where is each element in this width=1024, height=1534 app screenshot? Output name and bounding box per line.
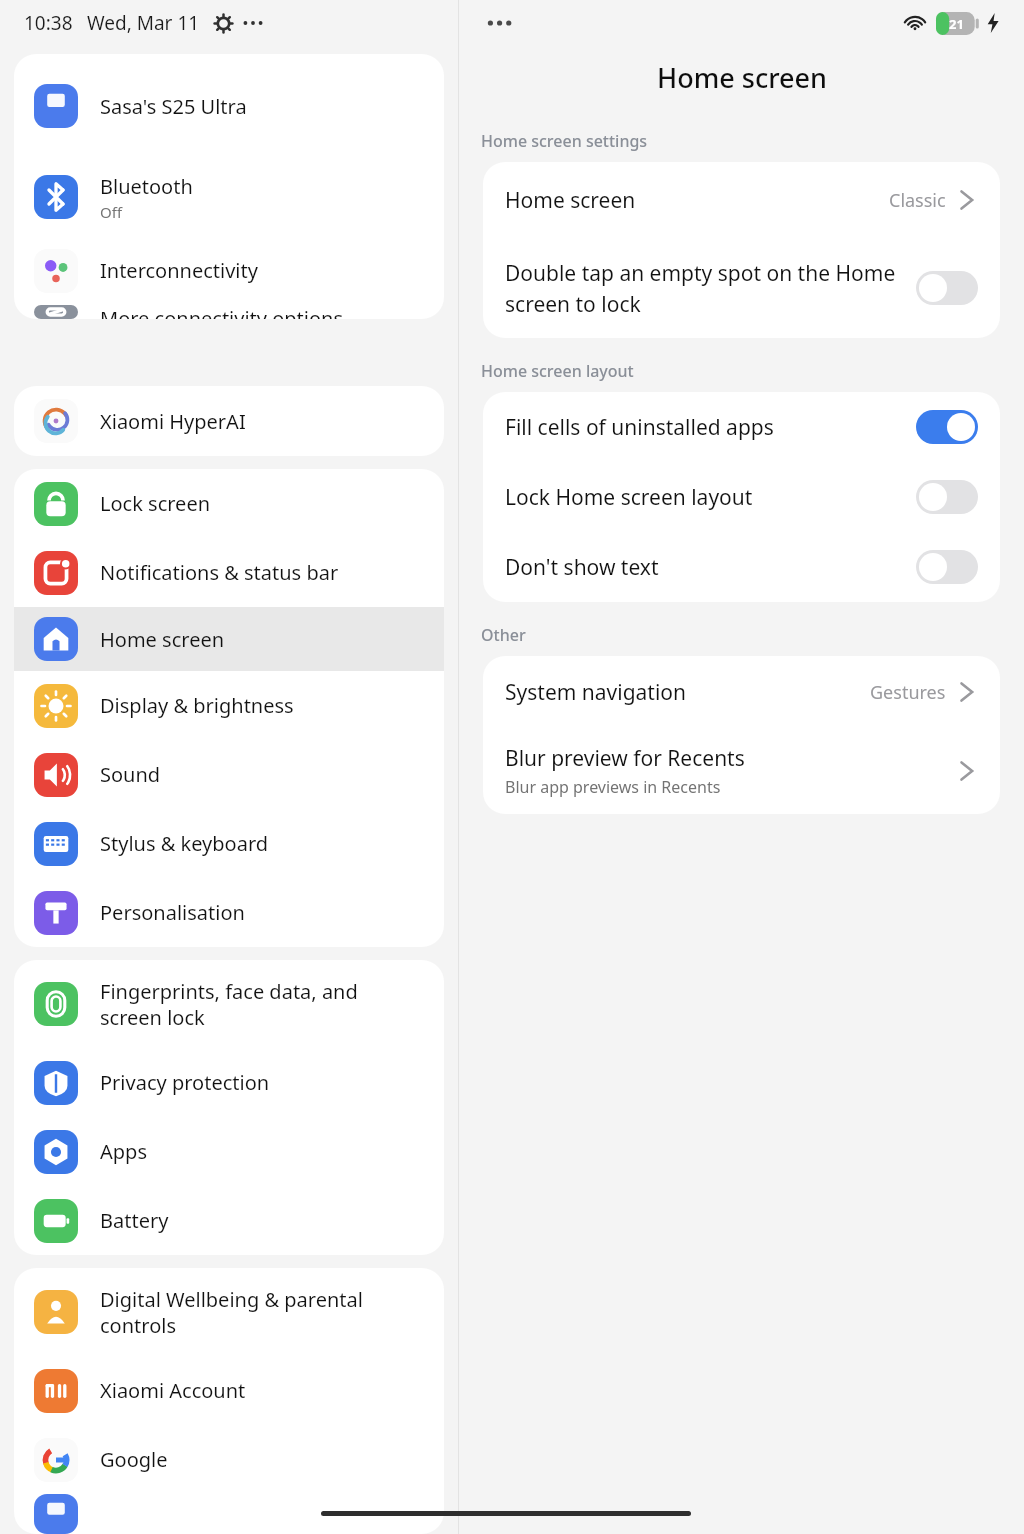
staticText: Battery — [100, 1207, 169, 1234]
button[interactable]: Battery — [14, 1186, 444, 1255]
button[interactable]: Notifications & status bar — [14, 538, 444, 607]
staticText: Stylus & keyboard — [100, 830, 269, 857]
staticText: Lock Home screen layout — [505, 483, 900, 512]
button[interactable]: Off — [916, 480, 978, 514]
staticText: Blur app previews in Recents — [505, 776, 721, 798]
staticText: Xiaomi HyperAI — [100, 408, 246, 435]
staticText: Sasa's S25 Ultra — [100, 93, 247, 120]
staticText: Don't show text — [505, 553, 900, 582]
staticText: Personalisation — [100, 899, 245, 926]
staticText: 21 — [949, 15, 964, 33]
button[interactable]: Double tap an empty spot on the Home scr… — [483, 238, 1000, 338]
button[interactable]: Sound — [14, 740, 444, 809]
button[interactable]: Display & brightness — [14, 671, 444, 740]
staticText: Digital Wellbeing & parental controls — [100, 1286, 363, 1339]
staticText: Home screen settings — [481, 130, 648, 152]
staticText: Apps — [100, 1138, 147, 1165]
staticText: Notifications & status bar — [100, 559, 339, 586]
button[interactable]: Sasa's S25 Ultra — [14, 54, 444, 158]
button[interactable]: Off — [916, 550, 978, 584]
staticText: Classic — [889, 188, 946, 213]
staticText: Display & brightness — [100, 692, 294, 719]
button[interactable]: Don't show text — [483, 532, 1000, 602]
button[interactable]: Xiaomi HyperAI — [14, 386, 444, 456]
staticText: Fingerprints, face data, and screen lock — [100, 978, 358, 1031]
staticText: Interconnectivity — [100, 257, 258, 284]
button[interactable]: Apps — [14, 1117, 444, 1186]
staticText: System navigation — [505, 678, 870, 707]
button[interactable]: Bluetooth — [14, 158, 444, 236]
staticText: Home screen — [657, 59, 827, 96]
button[interactable]: Digital Wellbeing & parental controls — [14, 1268, 444, 1356]
button[interactable] — [14, 1494, 444, 1534]
button[interactable]: Home screen — [483, 162, 1000, 238]
button[interactable]: Blur preview for Recents — [483, 728, 1000, 814]
other: Charging — [986, 13, 1000, 33]
staticText: Bluetooth — [100, 173, 193, 200]
staticText: Gestures — [870, 680, 946, 705]
staticText: Privacy protection — [100, 1069, 270, 1096]
staticText: 10:38 — [24, 10, 73, 36]
button[interactable]: Google — [14, 1425, 444, 1494]
button[interactable]: Lock Home screen layout — [483, 462, 1000, 532]
button[interactable]: Stylus & keyboard — [14, 809, 444, 878]
staticText: Off — [100, 202, 123, 222]
button[interactable]: Fingerprints, face data, and screen lock — [14, 960, 444, 1048]
staticText: Double tap an empty spot on the Home scr… — [505, 259, 900, 318]
staticText: Google — [100, 1446, 168, 1473]
staticText: Lock screen — [100, 490, 211, 517]
button[interactable]: Fill cells of uninstalled apps — [483, 392, 1000, 462]
button[interactable]: On — [916, 410, 978, 444]
button[interactable]: Personalisation — [14, 878, 444, 947]
staticText: Home screen — [100, 626, 225, 653]
button[interactable]: More connectivity options — [14, 305, 444, 319]
staticText: More connectivity options — [100, 305, 344, 319]
staticText: Xiaomi Account — [100, 1377, 246, 1404]
staticText: Wed, Mar 11 — [87, 10, 200, 36]
other: Settings — [214, 14, 233, 33]
button[interactable]: System navigation — [483, 656, 1000, 728]
staticText: Home screen — [505, 186, 889, 215]
staticText: Fill cells of uninstalled apps — [505, 413, 900, 442]
staticText: Sound — [100, 761, 161, 788]
staticText: Blur preview for Recents — [505, 744, 745, 773]
staticText: Home screen layout — [481, 360, 634, 382]
button[interactable]: Interconnectivity — [14, 236, 444, 305]
button[interactable]: Lock screen — [14, 469, 444, 538]
staticText: Other — [481, 624, 526, 646]
button[interactable]: Home screen — [14, 607, 444, 671]
other: Wi-Fi — [902, 13, 928, 33]
button[interactable]: Privacy protection — [14, 1048, 444, 1117]
button[interactable]: Off — [916, 271, 978, 305]
button[interactable]: Xiaomi Account — [14, 1356, 444, 1425]
